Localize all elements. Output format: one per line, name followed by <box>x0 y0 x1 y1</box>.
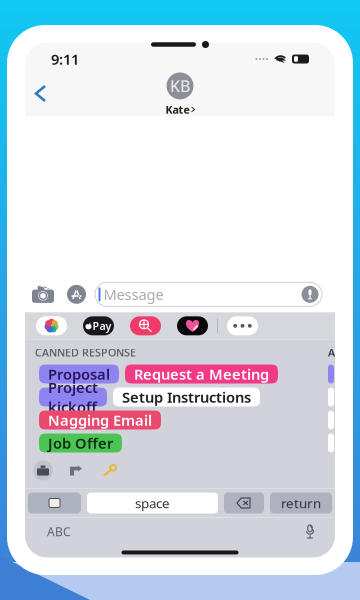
button[interactable]: Proposal <box>39 364 119 383</box>
button[interactable]: Camera <box>25 281 61 308</box>
button[interactable]: Request a Meeting <box>125 364 278 383</box>
staticText: KB <box>170 75 190 96</box>
staticText: CANNED RESPONSE <box>35 345 136 359</box>
button[interactable]: App Store <box>61 281 92 308</box>
button[interactable]: Setup Instructions <box>113 387 260 406</box>
button[interactable]: Back <box>25 77 56 110</box>
button[interactable]: Nagging Email <box>39 410 161 429</box>
staticText: Job Offer <box>48 433 113 453</box>
button[interactable]: Work <box>33 460 53 480</box>
staticText: return <box>281 494 321 512</box>
staticText: Pay <box>92 319 111 333</box>
staticText: Kate <box>165 102 189 117</box>
button[interactable]: return <box>270 492 332 513</box>
staticText: ABC <box>47 523 71 539</box>
staticText: Request a Meeting <box>134 364 269 384</box>
button[interactable]: Keyboard <box>28 492 81 513</box>
button[interactable]: Photos <box>36 316 67 335</box>
button[interactable]: KB <box>165 70 194 117</box>
staticText: Nagging Email <box>48 410 152 430</box>
button[interactable]: Digital Touch <box>177 316 208 335</box>
staticText: space <box>135 494 170 512</box>
button[interactable]: Apple Pay <box>83 316 114 335</box>
button[interactable]: Forward <box>66 461 86 479</box>
button[interactable]: Dictate <box>301 523 319 540</box>
button[interactable]: Project kickoff <box>39 387 107 406</box>
button[interactable]: Job Offer <box>39 433 122 452</box>
staticText: Proposal <box>48 364 110 384</box>
button[interactable]: Images <box>130 316 161 335</box>
button[interactable]: Record audio <box>301 286 318 303</box>
staticText: A <box>328 345 335 359</box>
staticText: Message <box>103 285 163 304</box>
button[interactable]: Delete <box>224 492 264 513</box>
staticText: 9:11 <box>51 49 79 69</box>
staticText: Project kickoff <box>48 377 98 416</box>
staticText: Setup Instructions <box>122 387 251 407</box>
button[interactable]: ABC <box>41 520 77 542</box>
button[interactable]: More <box>227 316 258 335</box>
button[interactable]: space <box>87 492 218 513</box>
button[interactable]: Keys <box>99 461 120 480</box>
